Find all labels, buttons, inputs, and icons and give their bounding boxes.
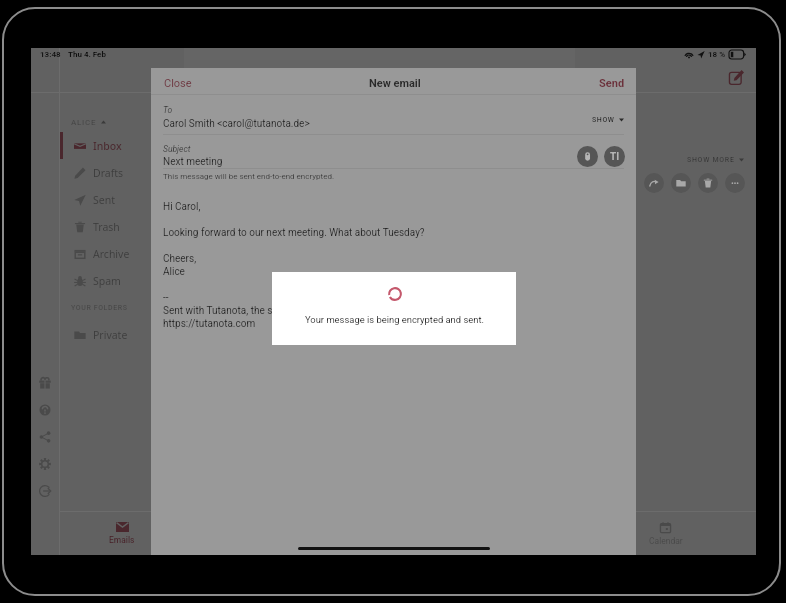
button[interactable]: SHOW (592, 116, 624, 124)
staticText: Drafts (93, 166, 124, 180)
staticText: Spam (93, 274, 121, 288)
staticText: Private (93, 328, 128, 342)
button[interactable]: Settings (31, 450, 59, 477)
staticText: This message will be sent end-to-end enc… (163, 172, 335, 181)
button[interactable]: Inbox (60, 132, 184, 159)
button[interactable]: Formatting (604, 146, 625, 167)
button[interactable]: Archive (60, 240, 184, 267)
button[interactable]: Forward (644, 173, 664, 193)
staticText: Sent (93, 193, 115, 207)
button[interactable]: New email (723, 64, 749, 90)
staticText: Your message is being encrypted and sent… (305, 314, 484, 325)
staticText: 18 % (708, 50, 726, 59)
button[interactable]: Calendar (575, 512, 756, 555)
button[interactable]: Invite friends (31, 369, 59, 396)
staticText: Subject (163, 144, 191, 154)
staticText: YOUR FOLDERS (71, 304, 128, 312)
staticText: To (163, 105, 173, 115)
button[interactable]: Close (151, 73, 200, 94)
button[interactable]: Delete (698, 173, 718, 193)
staticText: TI (610, 151, 620, 163)
staticText: 13:48 (40, 50, 61, 59)
button[interactable]: Move (671, 173, 691, 193)
button[interactable]: ALICE (60, 113, 184, 131)
staticText: Carol Smith <carol@tutanota.de> (163, 118, 310, 130)
staticText: Thu 4. Feb (68, 50, 106, 59)
staticText: Close (164, 77, 192, 90)
button[interactable]: SHOW MORE (575, 153, 744, 167)
staticText: New email (369, 77, 421, 90)
staticText: Trash (93, 220, 120, 234)
button[interactable]: Private (60, 321, 184, 348)
button[interactable]: Send (591, 73, 636, 94)
staticText: Inbox (93, 139, 122, 153)
button[interactable]: Help (31, 396, 59, 423)
staticText: ALICE (71, 118, 97, 127)
staticText: Archive (93, 247, 130, 261)
staticText: Calendar (649, 536, 683, 546)
button[interactable]: Trash (60, 213, 184, 240)
button[interactable]: Attach file (577, 146, 598, 167)
staticText: SHOW MORE (687, 156, 735, 164)
button[interactable]: Drafts (60, 159, 184, 186)
staticText: Next meeting (163, 156, 223, 168)
staticText: SHOW (592, 116, 615, 124)
button[interactable]: Emails (60, 512, 184, 555)
button[interactable]: Log out (31, 477, 59, 504)
button[interactable]: Sent (60, 186, 184, 213)
staticText: Emails (109, 535, 135, 545)
button[interactable]: More (725, 173, 745, 193)
button[interactable]: Share (31, 423, 59, 450)
button[interactable]: Spam (60, 267, 184, 294)
staticText: Hi Carol, Looking forward to our next me… (163, 201, 425, 330)
staticText: Send (599, 77, 625, 90)
